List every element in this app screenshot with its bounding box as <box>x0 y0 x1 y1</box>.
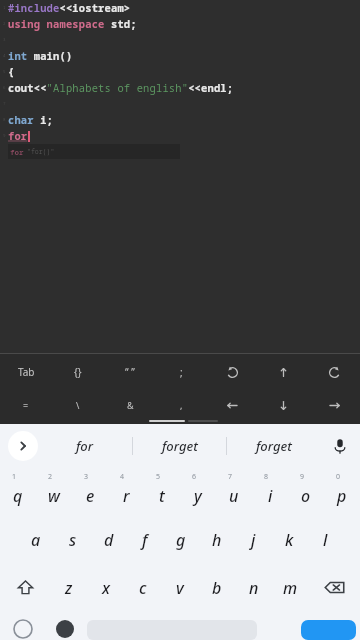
button[interactable]: x <box>87 564 124 611</box>
button[interactable]: f <box>127 516 163 564</box>
button[interactable]: Enter <box>301 620 356 640</box>
button[interactable]: = <box>0 394 52 416</box>
button[interactable]: Shift <box>0 564 50 611</box>
button[interactable]: l <box>307 516 343 564</box>
staticText: r <box>123 485 130 507</box>
staticText: 8 <box>3 117 6 123</box>
button[interactable]: 5 <box>144 468 180 516</box>
button[interactable]: z <box>50 564 87 611</box>
button[interactable]: Emoji <box>0 611 45 640</box>
staticText: w <box>48 485 60 507</box>
staticText: f <box>142 529 148 551</box>
staticText: z <box>65 577 73 599</box>
staticText: d <box>104 529 114 551</box>
staticText: e <box>86 485 95 507</box>
button[interactable]: Voice input <box>320 424 360 468</box>
staticText: 4 <box>120 472 125 482</box>
button[interactable]: g <box>163 516 199 564</box>
button[interactable]: ; <box>156 360 207 384</box>
staticText: 2 <box>48 472 53 482</box>
button[interactable]: k <box>271 516 307 564</box>
button[interactable]: forget <box>133 424 226 468</box>
button[interactable]: \ <box>52 394 104 416</box>
button[interactable]: b <box>198 564 235 611</box>
staticText: = <box>23 399 29 411</box>
staticText: i <box>268 485 273 507</box>
staticText: for <box>76 437 94 455</box>
staticText: 3 <box>84 472 89 482</box>
button[interactable]: Backspace <box>309 564 360 611</box>
staticText: 4 <box>3 53 6 59</box>
staticText: 1 <box>3 5 6 11</box>
button[interactable]: Expand toolbar <box>8 431 38 461</box>
staticText: ; <box>180 365 183 379</box>
button[interactable]: {} <box>52 360 104 384</box>
staticText: , <box>180 399 183 411</box>
staticText: {} <box>74 365 82 379</box>
staticText: x <box>102 577 110 599</box>
button[interactable]: 0 <box>324 468 360 516</box>
button[interactable]: 8 <box>252 468 288 516</box>
button[interactable]: 2 <box>36 468 72 516</box>
button[interactable]: 6 <box>180 468 216 516</box>
button[interactable]: h <box>199 516 235 564</box>
button[interactable]: for <box>8 144 180 159</box>
staticText: 3 <box>3 37 6 43</box>
button[interactable]: Move up <box>258 360 309 384</box>
button[interactable]: Move left <box>207 394 258 416</box>
staticText: 5 <box>156 472 161 482</box>
staticText: 6 <box>3 85 6 91</box>
button[interactable]: a <box>17 516 54 564</box>
staticText: 6 <box>192 472 197 482</box>
button[interactable]: “ ” <box>104 360 156 384</box>
button[interactable]: Move down <box>258 394 309 416</box>
button[interactable]: s <box>54 516 91 564</box>
staticText: forget <box>256 437 292 455</box>
button[interactable]: m <box>272 564 309 611</box>
button[interactable]: 9 <box>288 468 324 516</box>
staticText: g <box>176 529 186 551</box>
staticText: l <box>323 529 328 551</box>
staticText: \ <box>76 399 80 411</box>
staticText: k <box>285 529 294 551</box>
button[interactable]: v <box>161 564 198 611</box>
staticText: v <box>176 577 184 599</box>
button[interactable]: forget <box>227 424 320 468</box>
button[interactable]: Move right <box>309 394 360 416</box>
button[interactable]: d <box>91 516 127 564</box>
staticText: { <box>8 65 15 79</box>
button[interactable]: Undo <box>207 360 258 384</box>
staticText: using namespace std; <box>8 17 137 31</box>
staticText: c <box>139 577 147 599</box>
button[interactable]: 4 <box>108 468 144 516</box>
staticText: j <box>251 529 256 551</box>
staticText: 7 <box>228 472 233 482</box>
button[interactable]: 1 <box>0 468 36 516</box>
button[interactable]: c <box>124 564 161 611</box>
staticText: cout<<"Alphabets of english"<<endl; <box>8 81 234 95</box>
button[interactable]: 7 <box>216 468 252 516</box>
button[interactable]: n <box>235 564 272 611</box>
button[interactable]: 3 <box>72 468 108 516</box>
staticText: q <box>13 485 23 507</box>
staticText: for <box>8 129 28 143</box>
button[interactable]: for <box>38 424 132 468</box>
button[interactable]: Switch language <box>45 611 85 640</box>
button[interactable]: , <box>156 394 207 416</box>
staticText: #include<<iostream> <box>8 1 131 15</box>
staticText: t <box>159 485 165 507</box>
staticText: h <box>212 529 222 551</box>
staticText: n <box>249 577 259 599</box>
staticText: y <box>194 485 202 507</box>
button[interactable]: & <box>104 394 156 416</box>
staticText: u <box>229 485 239 507</box>
staticText: 9 <box>300 472 305 482</box>
staticText: 9 <box>3 133 6 139</box>
staticText: p <box>337 485 347 507</box>
button[interactable]: Redo <box>309 360 360 384</box>
staticText: for <box>10 147 24 157</box>
button[interactable]: Tab <box>0 360 52 384</box>
button[interactable]: j <box>235 516 271 564</box>
